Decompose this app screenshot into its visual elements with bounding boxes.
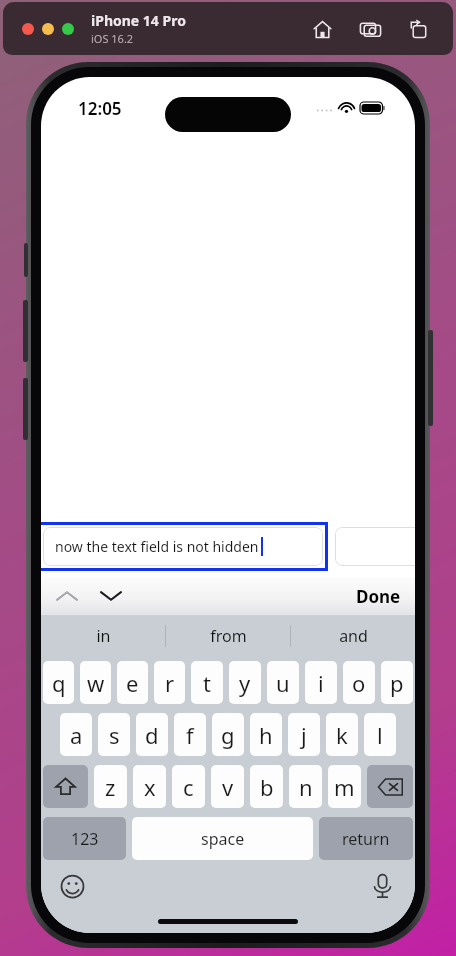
button[interactable]: Done [356, 585, 401, 608]
button[interactable]: w [80, 661, 111, 704]
staticText: and [339, 625, 368, 647]
button[interactable]: c [172, 765, 205, 808]
staticText: iPhone 14 Pro [91, 11, 186, 30]
staticText: Done [356, 585, 401, 608]
button[interactable]: Rotate [405, 16, 431, 42]
button[interactable]: space [132, 817, 313, 860]
staticText: n [299, 772, 313, 802]
button[interactable]: n [289, 765, 322, 808]
button[interactable]: in [41, 615, 165, 657]
button[interactable]: i [305, 661, 337, 704]
staticText: iOS 16.2 [91, 31, 134, 46]
button[interactable]: z [94, 765, 127, 808]
button[interactable]: Dictate [365, 869, 399, 903]
staticText: z [105, 772, 116, 802]
staticText: now the text field is not hidden [55, 537, 259, 556]
button[interactable]: o [343, 661, 375, 704]
staticText: y [239, 668, 251, 698]
button[interactable]: return [319, 817, 413, 860]
staticText: in [96, 625, 111, 647]
button[interactable]: Next field [95, 580, 127, 612]
staticText: t [203, 668, 211, 698]
button[interactable]: h [250, 713, 282, 756]
staticText: m [334, 772, 355, 802]
button[interactable]: q [43, 661, 74, 704]
button[interactable]: g [212, 713, 244, 756]
staticText: space [201, 828, 245, 850]
staticText: o [352, 668, 366, 698]
button[interactable]: k [326, 713, 358, 756]
staticText: u [276, 668, 290, 698]
staticText: e [126, 668, 139, 698]
staticText: k [336, 720, 348, 750]
staticText: d [145, 720, 159, 750]
button[interactable]: Minimise [42, 23, 54, 35]
button[interactable]: u [267, 661, 299, 704]
button[interactable]: Home [309, 16, 335, 42]
button[interactable]: a [60, 713, 92, 756]
staticText: v [222, 772, 234, 802]
button[interactable]: s [98, 713, 130, 756]
button[interactable] [335, 527, 415, 566]
staticText: l [377, 720, 383, 750]
button[interactable]: x [133, 765, 166, 808]
staticText: g [221, 720, 235, 750]
button[interactable]: l [364, 713, 396, 756]
staticText: c [183, 772, 194, 802]
staticText: j [301, 720, 307, 750]
button[interactable]: y [229, 661, 261, 704]
staticText: q [52, 668, 66, 698]
button[interactable]: Previous field [51, 580, 83, 612]
staticText: r [165, 668, 175, 698]
button[interactable]: j [288, 713, 320, 756]
staticText: x [144, 772, 156, 802]
button[interactable]: 123 [43, 817, 126, 860]
button[interactable]: f [174, 713, 206, 756]
staticText: w [87, 668, 105, 698]
button[interactable]: d [136, 713, 168, 756]
staticText: h [259, 720, 273, 750]
button[interactable]: now the text field is not hidden [41, 522, 328, 571]
button[interactable]: from [166, 615, 290, 657]
button[interactable]: Zoom [62, 23, 74, 35]
button[interactable]: p [381, 661, 413, 704]
button[interactable]: b [250, 765, 283, 808]
staticText: 12:05 [78, 97, 122, 120]
staticText: b [260, 772, 274, 802]
staticText: from [210, 625, 247, 647]
button[interactable]: Emoji [55, 869, 89, 903]
button[interactable]: e [117, 661, 148, 704]
staticText: s [109, 720, 120, 750]
button[interactable]: and [291, 615, 415, 657]
staticText: i [318, 668, 324, 698]
staticText: 123 [71, 828, 99, 850]
button[interactable]: t [191, 661, 223, 704]
button[interactable]: v [211, 765, 244, 808]
staticText: a [70, 720, 83, 750]
staticText: f [186, 720, 194, 750]
button[interactable]: Close [22, 23, 34, 35]
button[interactable]: r [154, 661, 185, 704]
button[interactable]: Backspace [367, 765, 413, 808]
button[interactable]: m [328, 765, 361, 808]
button[interactable]: Screenshot [357, 16, 383, 42]
button[interactable]: Shift [43, 765, 88, 808]
staticText: p [390, 668, 404, 698]
staticText: return [342, 828, 390, 850]
